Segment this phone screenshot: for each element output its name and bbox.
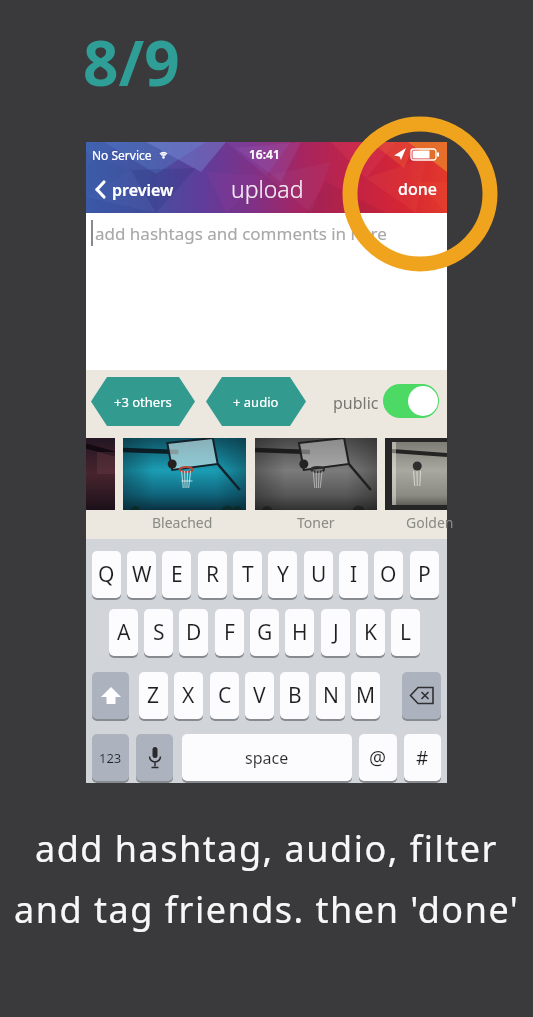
- button[interactable]: F: [215, 609, 244, 656]
- staticText: Toner: [297, 513, 335, 532]
- button[interactable]: Y: [268, 551, 297, 598]
- staticText: V: [253, 681, 266, 710]
- staticText: 16:41: [249, 146, 280, 162]
- button[interactable]: [383, 384, 439, 418]
- button[interactable]: [92, 672, 129, 719]
- staticText: @: [369, 745, 387, 771]
- staticText: A: [117, 618, 131, 647]
- button[interactable]: X: [174, 672, 203, 719]
- button[interactable]: C: [210, 672, 239, 719]
- button[interactable]: Z: [139, 672, 168, 719]
- button[interactable]: J: [321, 609, 350, 656]
- staticText: #: [416, 745, 429, 771]
- staticText: X: [182, 681, 195, 710]
- staticText: Y: [277, 560, 289, 589]
- button[interactable]: P: [410, 551, 439, 598]
- button[interactable]: L: [391, 609, 420, 656]
- button[interactable]: K: [356, 609, 385, 656]
- staticText: Golden: [406, 513, 454, 532]
- staticText: space: [245, 747, 289, 769]
- staticText: 123: [99, 749, 122, 767]
- button[interactable]: space: [182, 734, 352, 781]
- staticText: L: [400, 618, 412, 647]
- staticText: H: [292, 618, 308, 647]
- button[interactable]: +3 others: [91, 377, 195, 426]
- staticText: 8/9: [83, 20, 180, 104]
- button[interactable]: I: [339, 551, 368, 598]
- staticText: N: [323, 681, 339, 710]
- button[interactable]: N: [316, 672, 345, 719]
- button[interactable]: [255, 438, 377, 510]
- button[interactable]: preview: [90, 170, 185, 208]
- button[interactable]: E: [162, 551, 191, 598]
- button[interactable]: [402, 672, 441, 719]
- button[interactable]: Q: [92, 551, 121, 598]
- button[interactable]: D: [179, 609, 208, 656]
- button[interactable]: [385, 438, 447, 510]
- staticText: Z: [147, 681, 160, 710]
- staticText: add hashtag, audio, filter: [35, 824, 498, 873]
- button[interactable]: H: [285, 609, 314, 656]
- staticText: G: [257, 618, 273, 647]
- button[interactable]: @: [359, 734, 397, 781]
- staticText: + audio: [233, 393, 279, 411]
- staticText: T: [242, 560, 254, 589]
- staticText: O: [380, 560, 397, 589]
- staticText: D: [186, 618, 202, 647]
- staticText: F: [224, 618, 235, 647]
- staticText: S: [153, 618, 165, 647]
- staticText: upload: [231, 173, 304, 204]
- button[interactable]: T: [233, 551, 262, 598]
- button[interactable]: done: [391, 170, 443, 208]
- staticText: I: [350, 560, 358, 589]
- button[interactable]: [123, 438, 246, 510]
- staticText: No Service: [92, 147, 152, 163]
- staticText: and tag friends. then 'done': [14, 885, 520, 934]
- staticText: J: [333, 618, 339, 647]
- staticText: done: [398, 178, 437, 200]
- staticText: K: [364, 618, 377, 647]
- staticText: +3 others: [114, 393, 172, 411]
- staticText: M: [356, 681, 376, 710]
- button[interactable]: U: [304, 551, 333, 598]
- button[interactable]: V: [245, 672, 274, 719]
- button[interactable]: O: [374, 551, 403, 598]
- button[interactable]: #: [404, 734, 441, 781]
- button[interactable]: [136, 734, 173, 781]
- staticText: P: [418, 560, 431, 589]
- staticText: U: [311, 560, 327, 589]
- button[interactable]: M: [351, 672, 380, 719]
- staticText: B: [288, 681, 302, 710]
- button[interactable]: + audio: [206, 377, 306, 426]
- button[interactable]: A: [109, 609, 138, 656]
- staticText: E: [171, 560, 183, 589]
- button[interactable]: W: [127, 551, 156, 598]
- button[interactable]: B: [280, 672, 309, 719]
- staticText: Bleached: [152, 513, 213, 532]
- staticText: public: [333, 392, 379, 414]
- staticText: add hashtags and comments in here: [95, 222, 387, 245]
- button[interactable]: R: [198, 551, 227, 598]
- button[interactable]: G: [250, 609, 279, 656]
- staticText: Q: [98, 560, 115, 589]
- button[interactable]: [86, 438, 115, 510]
- staticText: R: [206, 560, 220, 589]
- staticText: C: [218, 681, 232, 710]
- button[interactable]: S: [144, 609, 173, 656]
- staticText: W: [132, 560, 152, 589]
- button[interactable]: 123: [92, 734, 129, 781]
- staticText: preview: [112, 179, 174, 201]
